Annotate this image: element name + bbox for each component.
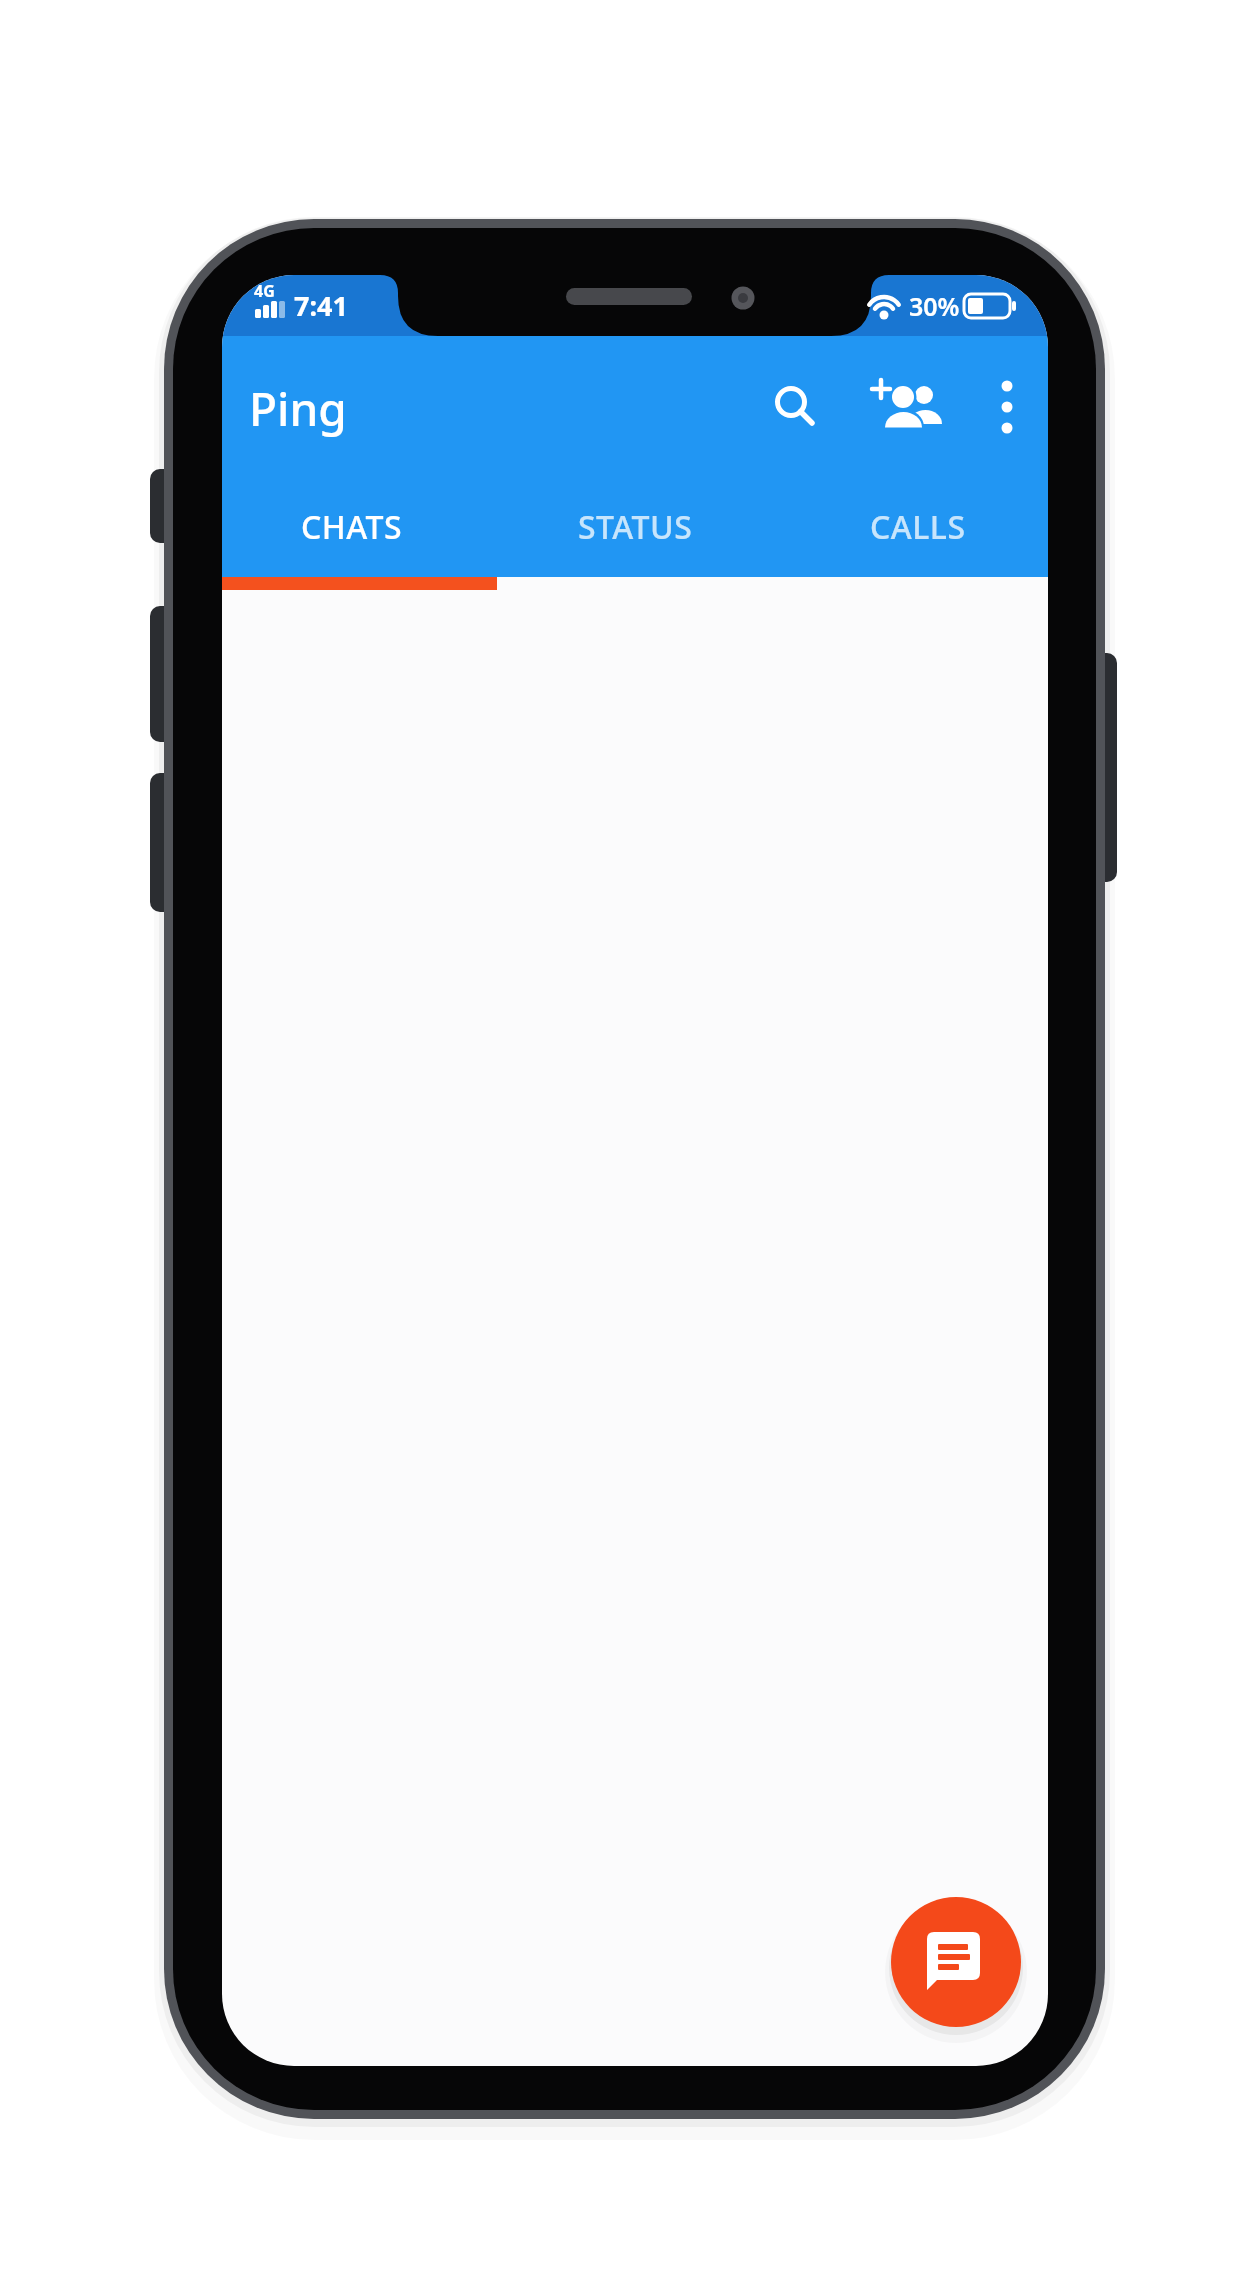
staticText: Ping bbox=[249, 377, 347, 440]
button[interactable]: STATUS bbox=[525, 502, 745, 552]
button[interactable] bbox=[766, 378, 822, 434]
staticText: 4G bbox=[254, 280, 275, 302]
button[interactable] bbox=[877, 378, 933, 434]
button[interactable] bbox=[979, 378, 1035, 434]
staticText: STATUS bbox=[578, 505, 693, 549]
staticText: CALLS bbox=[870, 505, 966, 549]
staticText: CHATS bbox=[301, 505, 403, 549]
button[interactable] bbox=[891, 1897, 1021, 2027]
staticText: 30% bbox=[909, 289, 960, 323]
staticText: 7:41 bbox=[294, 287, 348, 324]
button[interactable]: CHATS bbox=[242, 502, 462, 552]
button[interactable]: CALLS bbox=[808, 502, 1028, 552]
